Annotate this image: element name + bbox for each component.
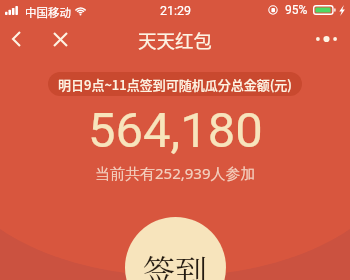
button[interactable]: 签到 xyxy=(125,217,226,280)
staticText: 天天红包 xyxy=(138,27,213,54)
button[interactable]: More options xyxy=(306,20,350,58)
button[interactable]: Close xyxy=(43,20,77,58)
staticText: 当前共有252,939人参加 xyxy=(95,163,256,183)
staticText: 明日9点~11点签到可随机瓜分总金额(元) xyxy=(58,75,292,94)
staticText: 中国移动 xyxy=(25,4,71,21)
staticText: 95% xyxy=(285,3,308,17)
staticText: 21:29 xyxy=(160,3,192,18)
button[interactable]: Back xyxy=(0,20,32,58)
staticText: 564,180 xyxy=(88,102,263,159)
staticText: 签到 xyxy=(143,246,208,280)
